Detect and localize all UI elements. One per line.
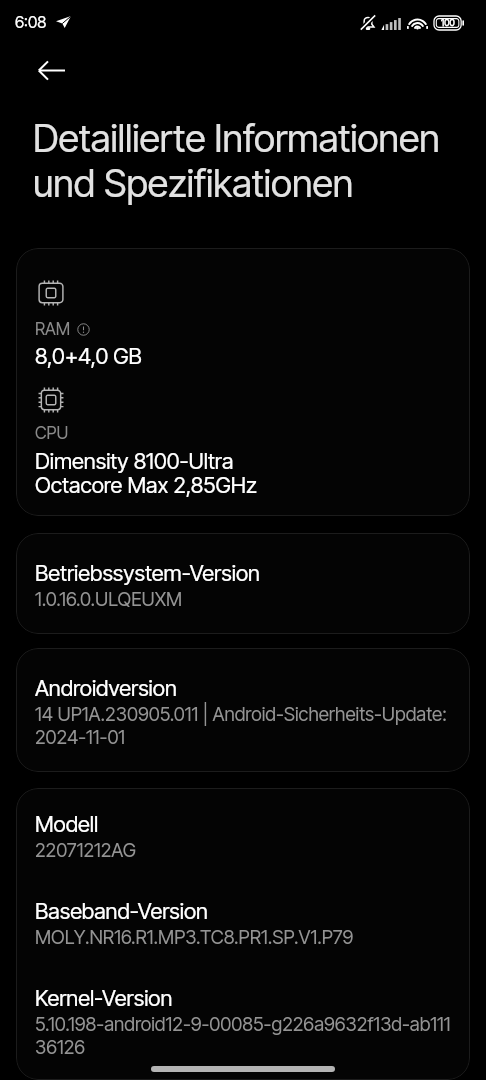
button[interactable]: Androidversion xyxy=(16,648,470,772)
staticText: Androidversion xyxy=(35,675,177,702)
staticText: RAM xyxy=(35,319,71,340)
staticText: 1.0.16.0.ULQEUXM xyxy=(35,588,183,611)
staticText: MOLY.NR16.R1.MP3.TC8.PR1.SP.V1.P79 xyxy=(35,926,354,949)
button[interactable]: Modell xyxy=(16,788,470,1080)
staticText: Detaillierte Informationen und Spezifika… xyxy=(33,116,458,206)
button[interactable]: Back xyxy=(29,48,73,92)
staticText: 14 UP1A.230905.011 | Android-Sicherheits… xyxy=(35,703,450,749)
button[interactable]: Betriebssystem-Version xyxy=(16,533,470,634)
staticText: 5.10.198-android12-9-00085-g226a9632f13d… xyxy=(35,1013,450,1056)
staticText: Baseband-Version xyxy=(35,898,208,925)
staticText: Kernel-Version xyxy=(35,985,173,1012)
staticText: 100 xyxy=(441,17,455,28)
staticText: Dimensity 8100-Ultra Octacore Max 2,85GH… xyxy=(35,450,257,498)
staticText: Modell xyxy=(35,811,99,838)
staticText: CPU xyxy=(35,423,69,444)
staticText: 6:08 xyxy=(15,12,47,31)
staticText: 8,0+4,0 GB xyxy=(35,343,142,370)
staticText: 22071212AG xyxy=(35,839,136,862)
button[interactable]: RAM xyxy=(16,248,470,516)
staticText: Betriebssystem-Version xyxy=(35,560,260,587)
